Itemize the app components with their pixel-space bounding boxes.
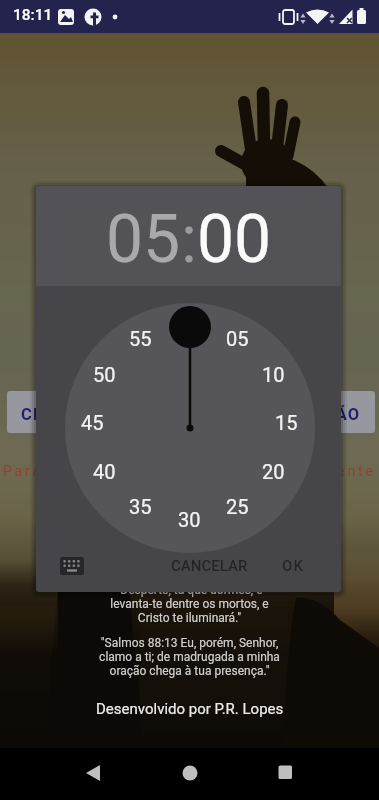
staticText: 05 [106,201,181,278]
staticText: Desenvolvido por P.R. Lopes [96,700,284,718]
staticText: CANCELAR [171,557,248,575]
staticText: 15 [275,411,298,434]
staticText: 30 [178,508,201,531]
button[interactable]: CANCELAR [156,544,262,588]
staticText: 35 [129,495,152,518]
staticText: CLIQUE AQUI PARA FAZER SUA ORAÇÃO [21,405,361,424]
button[interactable] [252,753,312,795]
staticText: 00 [197,201,272,278]
staticText: 25 [226,495,249,518]
staticText: : [181,201,197,278]
staticText: 10 [262,363,285,386]
staticText: 55 [129,327,152,350]
staticText: 18:11 [13,6,53,24]
staticText: 20 [262,460,285,483]
button[interactable] [66,753,126,795]
staticText: "Salmos 88:13 Eu, porém, Senhor, clamo a… [99,636,280,678]
staticText: 45 [81,411,104,434]
button[interactable] [52,549,92,583]
staticText: 50 [93,363,116,386]
staticText: 05 [226,327,249,350]
staticText: "Desperte, tu que dormes, e levanta-te d… [110,583,269,625]
staticText: Para desativar o alarme clique novamente [3,463,376,479]
button[interactable] [160,753,220,795]
button[interactable]: OK [270,544,316,588]
staticText: OK [282,557,305,575]
staticText: 40 [93,460,116,483]
button[interactable]: CLIQUE AQUI PARA FAZER SUA ORAÇÃO [7,391,375,433]
